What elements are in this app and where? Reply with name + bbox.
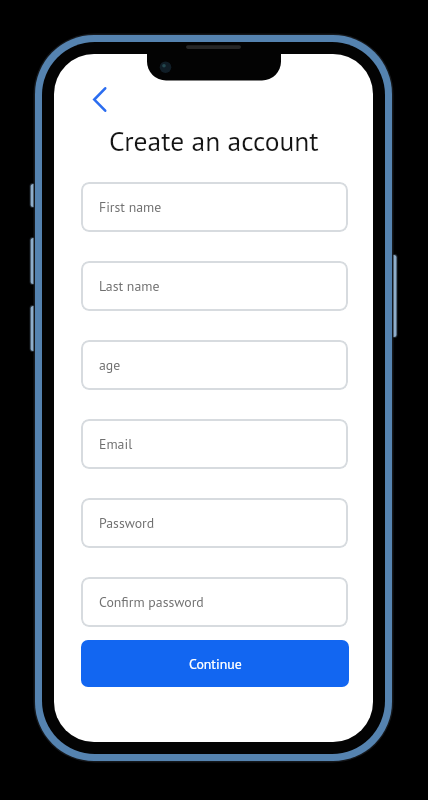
staticText: age [99,356,121,374]
button[interactable]: Continue [81,640,349,687]
staticText: Email [99,435,133,453]
button[interactable] [84,83,118,117]
button[interactable]: Email [81,419,348,469]
staticText: Confirm password [99,593,204,611]
button[interactable]: First name [81,182,348,232]
staticText: Last name [99,277,160,295]
button[interactable]: Password [81,498,348,548]
button[interactable]: Confirm password [81,577,348,627]
staticText: First name [99,198,162,216]
button[interactable]: age [81,340,348,390]
button[interactable]: Last name [81,261,348,311]
staticText: Continue [189,655,242,673]
staticText: Create an account [109,123,319,159]
staticText: Password [99,514,155,532]
